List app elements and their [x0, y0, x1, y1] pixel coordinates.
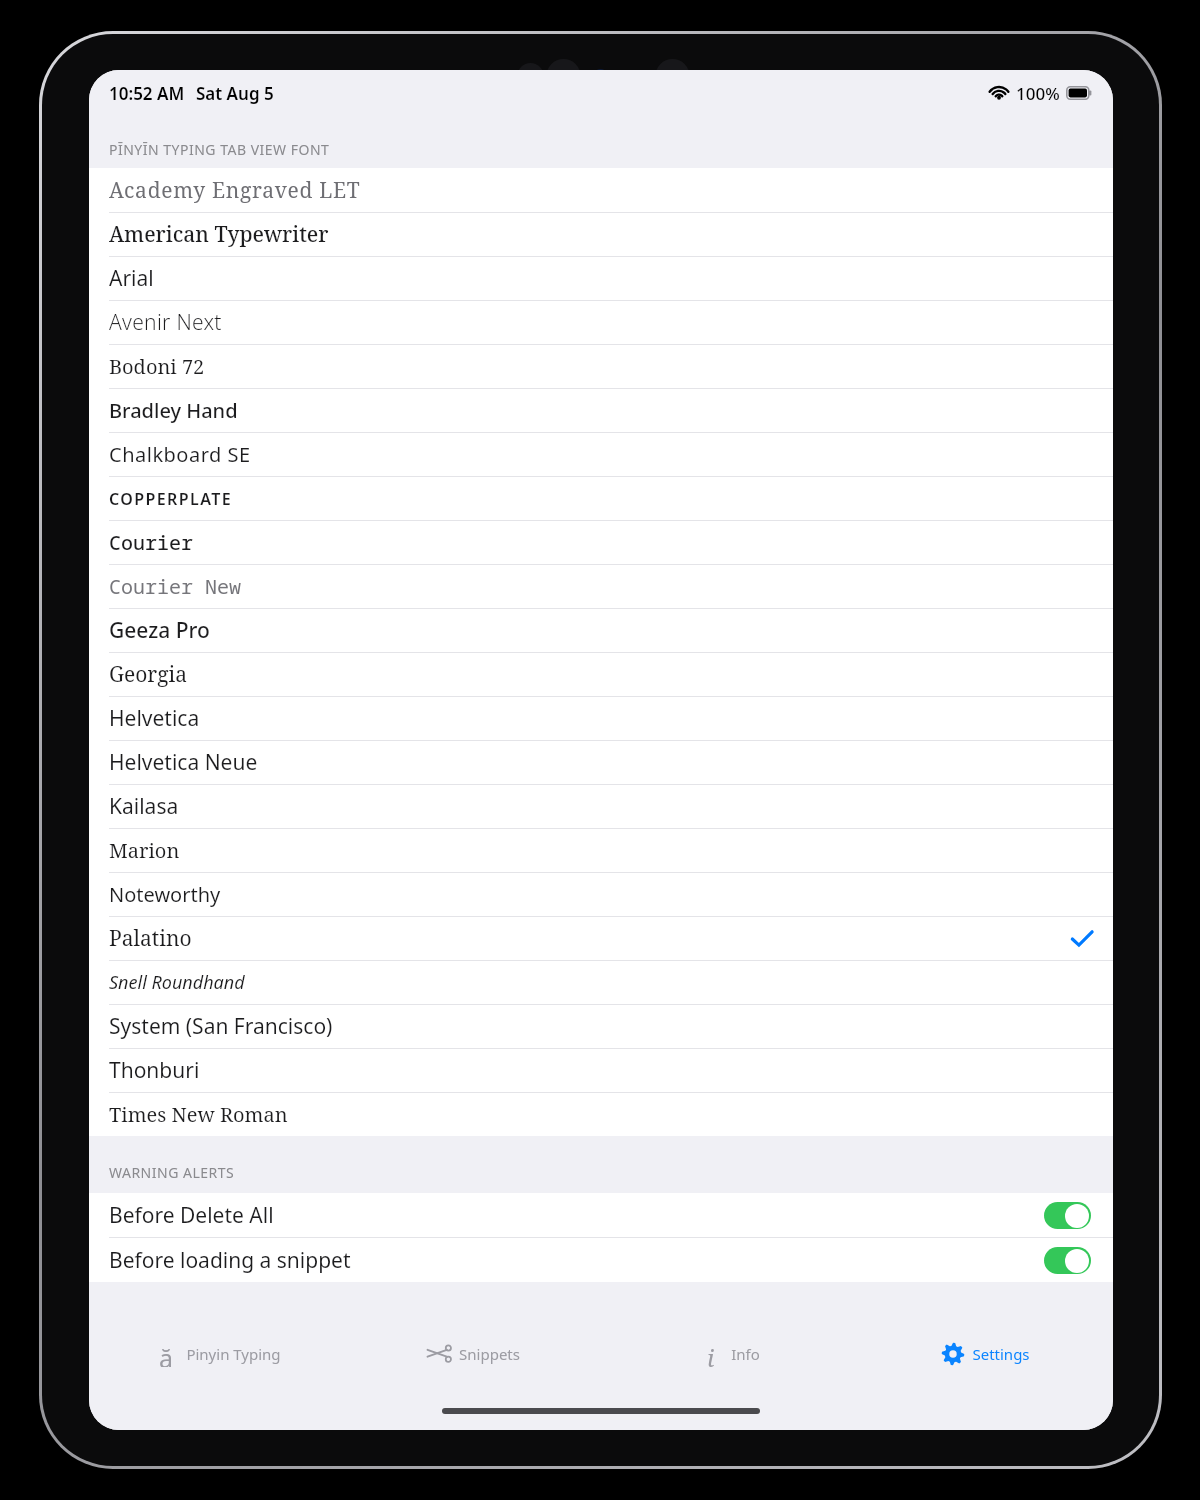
staticText: Snell Roundhand [109, 970, 245, 995]
staticText: Georgia [109, 660, 188, 689]
staticText: Times New Roman [109, 1101, 288, 1128]
staticText: Kailasa [109, 792, 179, 821]
staticText: 10:52 AM [109, 82, 185, 105]
button[interactable]: Before loading a snippet [89, 1237, 1113, 1282]
staticText: Settings [972, 1344, 1030, 1364]
button[interactable]: Before Delete All [89, 1193, 1113, 1237]
staticText: Marion [109, 837, 180, 864]
staticText: Sat Aug 5 [196, 82, 274, 105]
button[interactable]: Snell Roundhand [89, 960, 1113, 1004]
staticText: Courier [109, 529, 193, 556]
staticText: Bodoni 72 [109, 353, 205, 380]
staticText: Geeza Pro [109, 616, 210, 645]
staticText: i [707, 1341, 715, 1367]
button[interactable]: American Typewriter [89, 212, 1113, 256]
staticText: Chalkboard SE [109, 441, 251, 468]
button[interactable]: Settings [857, 1322, 1113, 1386]
button[interactable]: Georgia [89, 652, 1113, 696]
button[interactable]: Helvetica Neue [89, 740, 1113, 784]
button[interactable]: Bradley Hand [89, 388, 1113, 432]
button[interactable]: Noteworthy [89, 872, 1113, 916]
button[interactable]: Kailasa [89, 784, 1113, 828]
button[interactable]: Geeza Pro [89, 608, 1113, 652]
button[interactable]: Courier New [89, 564, 1113, 608]
staticText: Arial [109, 264, 154, 293]
staticText: PĪNYĪN TYPING TAB VIEW FONT [109, 140, 330, 159]
staticText: Thonburi [109, 1056, 200, 1085]
staticText: Snippets [459, 1344, 520, 1364]
staticText: Before loading a snippet [109, 1246, 351, 1275]
button[interactable]: System (San Francisco) [89, 1004, 1113, 1048]
staticText: Avenir Next [109, 308, 222, 337]
button[interactable]: Courier [89, 520, 1113, 564]
button[interactable]: Times New Roman [89, 1092, 1113, 1136]
staticText: Courier New [109, 573, 241, 600]
staticText: 100% [1016, 82, 1060, 105]
staticText: American Typewriter [109, 220, 329, 249]
staticText: Before Delete All [109, 1201, 274, 1230]
staticText: Noteworthy [109, 881, 221, 908]
button[interactable]: Academy Engraved LET [89, 168, 1113, 212]
staticText: Palatino [109, 924, 192, 953]
button[interactable]: Avenir Next [89, 300, 1113, 344]
staticText: Academy Engraved LET [109, 176, 361, 205]
button[interactable]: Bodoni 72 [89, 344, 1113, 388]
button[interactable]: COPPERPLATE [89, 476, 1113, 520]
staticText: Info [731, 1344, 760, 1364]
button[interactable]: Snippets [345, 1322, 601, 1386]
staticText: ă [159, 1341, 174, 1367]
staticText: Helvetica [109, 704, 200, 733]
button[interactable]: Palatino [89, 916, 1113, 960]
staticText: WARNING ALERTS [109, 1163, 235, 1182]
button[interactable]: Marion [89, 828, 1113, 872]
staticText: System (San Francisco) [109, 1012, 333, 1041]
button[interactable]: Helvetica [89, 696, 1113, 740]
staticText: Helvetica Neue [109, 748, 258, 777]
staticText: COPPERPLATE [109, 488, 233, 510]
staticText: Bradley Hand [109, 397, 238, 424]
button[interactable]: Chalkboard SE [89, 432, 1113, 476]
button[interactable]: ă [89, 1322, 345, 1386]
button[interactable]: Thonburi [89, 1048, 1113, 1092]
button[interactable]: Arial [89, 256, 1113, 300]
staticText: Pinyin Typing [186, 1344, 281, 1364]
button[interactable]: i [601, 1322, 857, 1386]
